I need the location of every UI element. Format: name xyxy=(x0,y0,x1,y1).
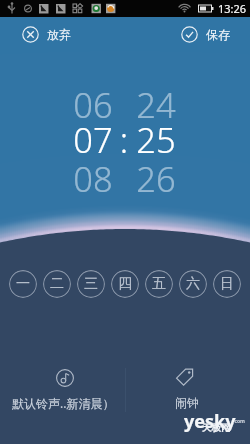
staticText: 五 xyxy=(152,275,166,293)
staticText: 07 xyxy=(72,116,114,163)
staticText: 06 xyxy=(72,81,114,128)
button[interactable]: 六 xyxy=(179,270,207,298)
staticText: 26 xyxy=(135,155,177,202)
staticText: 保存 xyxy=(206,27,230,42)
staticText: 一 xyxy=(16,275,30,293)
other: Label xyxy=(176,368,195,387)
staticText: 六 xyxy=(186,275,200,293)
button[interactable] xyxy=(72,80,114,185)
button[interactable]: 日 xyxy=(213,270,241,298)
staticText: 24 xyxy=(135,81,177,128)
staticText: yesky xyxy=(184,409,236,434)
staticText: : xyxy=(116,116,132,163)
staticText: 默认铃声..新清晨） xyxy=(12,395,115,411)
button[interactable]: Label xyxy=(125,362,250,414)
staticText: 08 xyxy=(72,155,114,202)
button[interactable]: 四 xyxy=(111,270,139,298)
button[interactable] xyxy=(135,80,177,185)
button[interactable]: 二 xyxy=(43,270,71,298)
staticText: 25 xyxy=(135,116,177,163)
button[interactable]: 三 xyxy=(77,270,105,298)
staticText: 三 xyxy=(84,275,98,293)
button[interactable]: 放弃 xyxy=(0,21,79,48)
button[interactable]: 保存 xyxy=(173,21,250,48)
staticText: 二 xyxy=(50,275,64,293)
button[interactable]: 五 xyxy=(145,270,173,298)
button[interactable]: 一 xyxy=(9,270,37,298)
staticText: 天极网 xyxy=(202,422,231,434)
staticText: 放弃 xyxy=(47,27,71,42)
staticText: 四 xyxy=(118,275,132,293)
staticText: 13:26 xyxy=(218,1,247,16)
button[interactable]: Ringtone xyxy=(0,362,125,414)
other: Ringtone xyxy=(56,369,74,387)
staticText: .com xyxy=(233,418,245,425)
staticText: 日 xyxy=(220,275,234,293)
staticText: 闹钟 xyxy=(175,395,199,410)
